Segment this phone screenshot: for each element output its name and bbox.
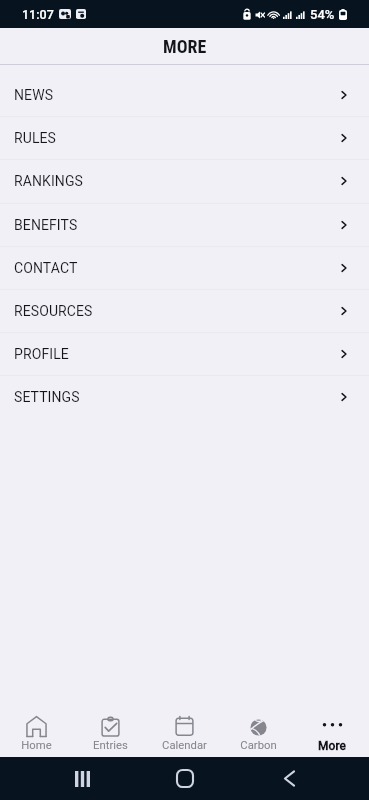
staticText: BENEFITS [14, 217, 78, 233]
button[interactable]: RANKINGS [0, 159, 369, 202]
button[interactable]: Back [267, 757, 311, 800]
staticText: 11:07 [22, 7, 54, 22]
button[interactable]: CONTACT [0, 246, 369, 289]
staticText: CONTACT [14, 260, 78, 276]
staticText: RULES [14, 130, 57, 146]
staticText: 54% [310, 7, 335, 22]
button[interactable]: Calendar [147, 713, 221, 757]
button[interactable]: Home [163, 757, 207, 800]
button[interactable]: RULES [0, 116, 369, 159]
button[interactable]: Entries [73, 713, 147, 757]
button[interactable]: NEWS [0, 73, 369, 116]
button[interactable]: More [295, 713, 369, 757]
button[interactable]: Carbon [221, 713, 295, 757]
button[interactable]: SETTINGS [0, 375, 369, 418]
button[interactable]: RESOURCES [0, 289, 369, 332]
staticText: MORE [163, 36, 207, 57]
staticText: RESOURCES [14, 303, 93, 319]
staticText: NEWS [14, 87, 54, 103]
button[interactable]: BENEFITS [0, 203, 369, 246]
button[interactable]: Recent apps [60, 757, 104, 800]
staticText: Entries [93, 739, 128, 752]
staticText: Calendar [162, 739, 207, 752]
button[interactable]: PROFILE [0, 332, 369, 375]
staticText: Carbon [240, 739, 277, 752]
staticText: Home [21, 739, 52, 752]
staticText: RANKINGS [14, 173, 83, 189]
button[interactable]: Home [0, 713, 73, 757]
staticText: SETTINGS [14, 389, 80, 405]
staticText: PROFILE [14, 346, 69, 362]
staticText: More [318, 739, 346, 753]
